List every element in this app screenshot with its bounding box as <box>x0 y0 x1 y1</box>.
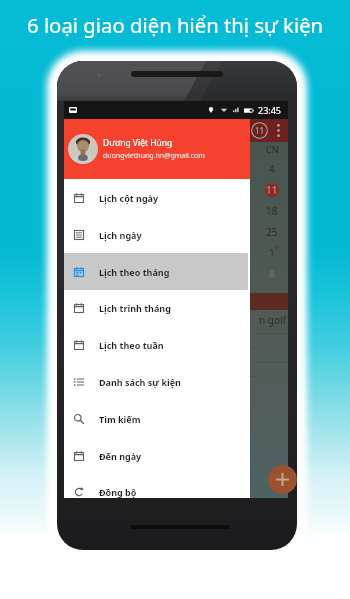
staticText: duongviethung.hn@gmail.com <box>103 151 205 161</box>
staticText: 25 <box>74 225 86 239</box>
button[interactable]: Lịch ngày <box>64 216 250 253</box>
staticText: Lịch theo tuần <box>99 339 164 351</box>
staticText: 4 <box>77 162 83 176</box>
staticText: 11 <box>138 183 150 197</box>
staticText: 1 <box>237 246 243 260</box>
button[interactable]: T5 <box>160 142 192 498</box>
staticText: Lịch cột ngày <box>99 192 159 204</box>
staticText: 1 <box>205 246 211 260</box>
button[interactable]: Add event <box>268 465 297 494</box>
staticText: ăn golf <box>224 313 256 341</box>
staticText: ăn golf <box>96 313 128 341</box>
button[interactable]: Danh sách sự kiện <box>64 363 250 400</box>
staticText: 8 <box>109 267 115 281</box>
staticText: CN <box>266 143 279 155</box>
staticText: T3 <box>107 143 118 155</box>
staticText: T6 <box>203 143 214 155</box>
staticText: Lịch theo tháng <box>99 266 170 278</box>
staticText: Tìm kiếm <box>99 413 141 425</box>
staticText: 6 loại giao diện hiển thị sự kiện <box>27 11 324 39</box>
button[interactable]: T2 <box>64 142 96 498</box>
button[interactable]: Đồng bộ <box>64 473 250 510</box>
staticText: Lịch ngày <box>99 229 142 241</box>
staticText: Lịch trình tháng <box>99 302 171 314</box>
staticText: ăn golf <box>64 313 96 341</box>
button[interactable]: Đến ngày <box>64 437 250 474</box>
staticText: 1 <box>269 246 275 260</box>
button[interactable]: More options <box>274 121 282 140</box>
staticText: ăn golf <box>160 313 192 341</box>
staticText: Đến ngày <box>99 450 142 462</box>
staticText: 4 <box>269 162 275 176</box>
button[interactable]: T6 <box>192 142 224 498</box>
staticText: 18 <box>266 204 278 218</box>
staticText: T4 <box>139 143 150 155</box>
staticText: 25 <box>138 225 150 239</box>
staticText: Dương Việt Hùng <box>103 137 173 149</box>
staticText: 25 <box>106 225 118 239</box>
staticText: 8 <box>269 267 275 281</box>
staticText: 11 <box>266 183 278 197</box>
staticText: 1 <box>173 246 179 260</box>
button[interactable]: CN <box>256 142 288 498</box>
staticText: 11 <box>255 125 265 136</box>
staticText: 8 <box>141 267 147 281</box>
staticText: Đồng bộ <box>99 486 137 498</box>
button[interactable]: T4 <box>128 142 160 498</box>
staticText: 8 <box>77 267 83 281</box>
staticText: 23:45 <box>258 104 282 116</box>
button[interactable]: Lịch theo tuần <box>64 326 250 363</box>
staticText: T2 <box>75 143 86 155</box>
staticText: 1 <box>77 246 83 260</box>
staticText: T5 <box>171 143 182 155</box>
staticText: Danh sách sự kiện <box>99 376 181 388</box>
button[interactable]: Today <box>251 122 268 139</box>
button[interactable]: Lịch trình tháng <box>64 289 250 326</box>
staticText: n golf <box>259 313 286 327</box>
staticText: 1 <box>109 246 115 260</box>
staticText: 11 <box>106 183 118 197</box>
button[interactable]: Lịch theo tháng <box>64 253 248 290</box>
staticText: 1 <box>141 246 147 260</box>
button[interactable]: Tìm kiếm <box>64 400 250 437</box>
button[interactable]: Lịch cột ngày <box>64 179 250 216</box>
staticText: 11 <box>74 183 86 197</box>
button[interactable]: T3 <box>96 142 128 498</box>
button[interactable]: T7 <box>224 142 256 498</box>
staticText: 25 <box>266 225 278 239</box>
